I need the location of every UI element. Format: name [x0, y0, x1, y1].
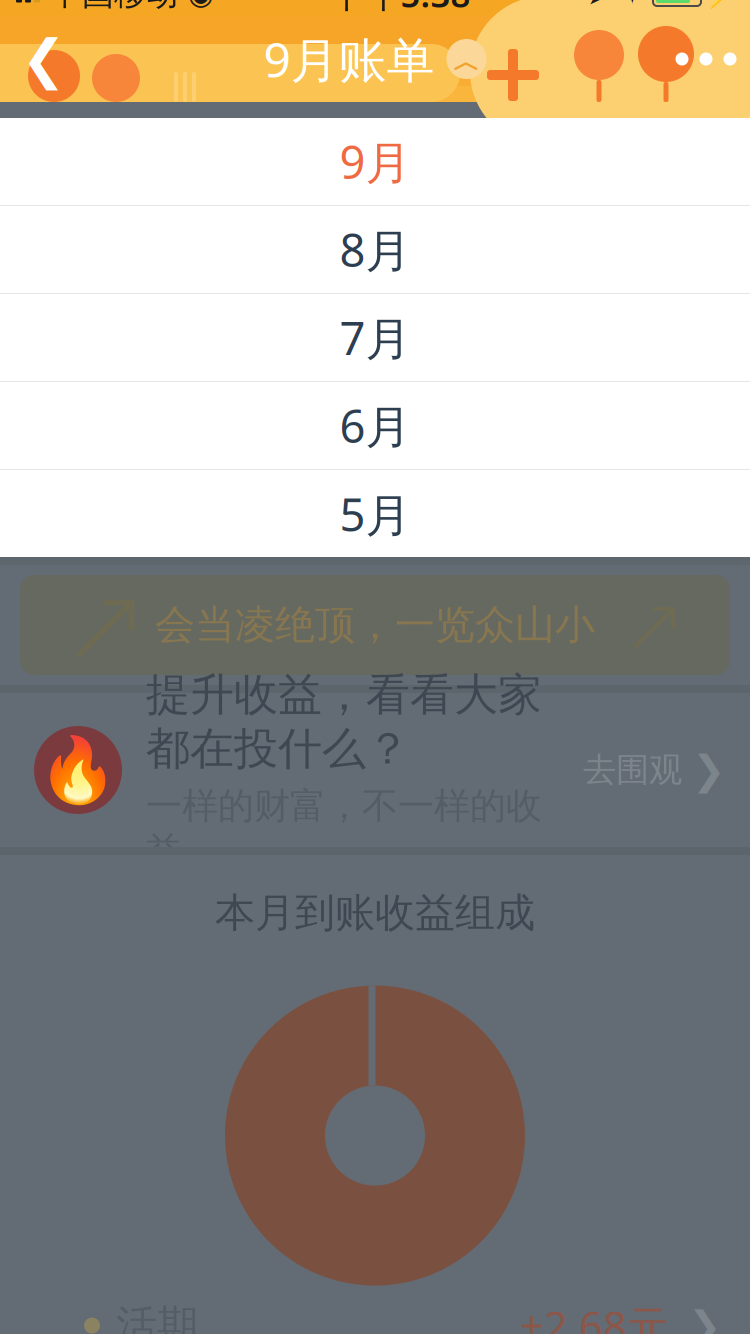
staticText: 去围观 — [583, 749, 682, 790]
staticText: ⚡ — [703, 0, 736, 9]
button[interactable]: 更多 — [662, 16, 750, 102]
button[interactable]: 7月 — [0, 294, 750, 382]
button[interactable]: 9月 — [0, 118, 750, 206]
staticText: 提升收益，看看大家都在投什么？ — [146, 668, 542, 776]
staticText: 9月账单 — [263, 27, 434, 91]
staticText: 5月 — [339, 484, 410, 544]
staticText: 6月 — [339, 395, 410, 456]
staticText: 中国移动 — [50, 0, 178, 14]
button[interactable]: ↗ — [0, 565, 750, 685]
button[interactable]: 9月账单 — [253, 19, 496, 99]
staticText: ◉ — [188, 0, 214, 11]
staticText: ❯ — [688, 1303, 722, 1334]
staticText: 一样的财富，不一样的收益 — [146, 784, 542, 872]
staticText: 8月 — [339, 219, 410, 280]
button[interactable]: 🔥 — [0, 693, 750, 847]
staticText: ✦ — [620, 0, 645, 11]
staticText: +2.68元 — [520, 1298, 668, 1334]
staticText: 9月 — [339, 131, 410, 192]
staticText: 本月到账收益组成 — [215, 888, 535, 937]
button[interactable]: 6月 — [0, 382, 750, 470]
button[interactable]: 5月 — [0, 470, 750, 558]
button[interactable]: 8月 — [0, 206, 750, 294]
staticText: ❮ — [21, 29, 66, 89]
staticText: 🔥 — [38, 733, 118, 806]
staticText: 活期 — [116, 1300, 198, 1334]
button[interactable]: 返回 — [0, 16, 88, 102]
staticText: ︿ — [453, 46, 480, 78]
staticText: ❯ — [692, 747, 726, 793]
staticText: ↗ — [60, 564, 149, 686]
staticText: 会当凌绝顶，一览众山小 — [155, 600, 595, 649]
staticText: 下午5:38 — [330, 0, 470, 17]
staticText: ➤ — [587, 0, 612, 11]
button[interactable]: 活期 — [0, 1294, 750, 1334]
staticText: 7月 — [339, 307, 410, 368]
